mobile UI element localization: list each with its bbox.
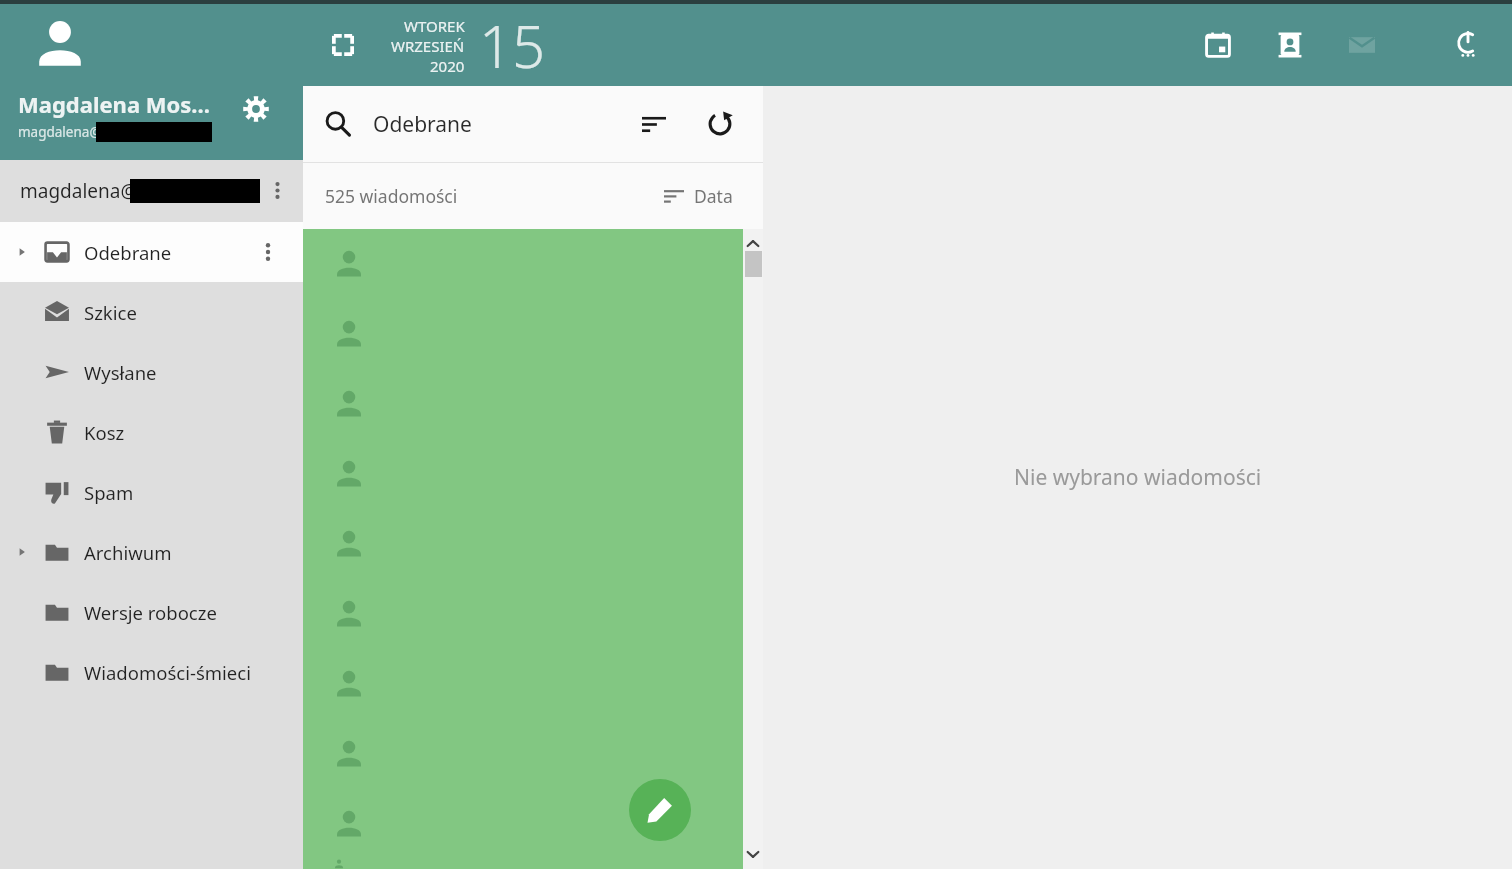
staticText: Data — [694, 184, 733, 208]
button[interactable]: Odebrane — [0, 222, 303, 282]
button[interactable]: Compose — [629, 779, 691, 841]
staticText: Odebrane — [84, 240, 172, 265]
staticText: Wersje robocze — [84, 600, 217, 625]
button[interactable]: Fullscreen — [323, 25, 363, 65]
button[interactable]: Contacts — [1268, 23, 1312, 67]
button[interactable]: Data — [656, 178, 741, 214]
staticText: 15 — [479, 6, 546, 85]
button[interactable]: Spam — [0, 462, 303, 522]
button[interactable]: Kosz — [0, 402, 303, 462]
staticText: WTOREK — [404, 16, 465, 36]
staticText: Wiadomości-śmieci — [84, 660, 251, 685]
staticText: 525 wiadomości — [325, 184, 458, 208]
staticText: 2020 — [430, 56, 465, 76]
staticText: Wysłane — [84, 360, 157, 385]
button[interactable]: magdalena@ — [0, 160, 303, 222]
staticText: Kosz — [84, 420, 125, 445]
staticText: WRZESIEŃ — [391, 36, 465, 56]
button[interactable]: Refresh — [699, 103, 741, 145]
button[interactable]: Mail — [1340, 23, 1384, 67]
button[interactable]: Wiadomości-śmieci — [0, 642, 303, 702]
button[interactable]: Power — [1446, 23, 1490, 67]
staticText: Spam — [84, 480, 134, 505]
staticText: Odebrane — [373, 110, 472, 139]
button[interactable]: Settings — [239, 92, 273, 126]
button[interactable]: Odebrane — [303, 86, 763, 162]
button[interactable]: Filter — [633, 103, 675, 145]
staticText: Szkice — [84, 300, 137, 325]
button[interactable]: Archiwum — [0, 522, 303, 582]
button[interactable]: Szkice — [0, 282, 303, 342]
staticText: Magdalena Mos... — [18, 89, 210, 119]
button[interactable]: Folder options — [251, 235, 285, 269]
button[interactable]: Wersje robocze — [0, 582, 303, 642]
button[interactable]: Calendar — [1196, 23, 1240, 67]
staticText: Nie wybrano wiadomości — [1014, 463, 1262, 492]
button[interactable]: Account options — [268, 176, 287, 206]
staticText: magdalena@ — [18, 123, 102, 141]
staticText: Archiwum — [84, 540, 172, 565]
staticText: magdalena@ — [20, 178, 138, 204]
button[interactable]: Wysłane — [0, 342, 303, 402]
